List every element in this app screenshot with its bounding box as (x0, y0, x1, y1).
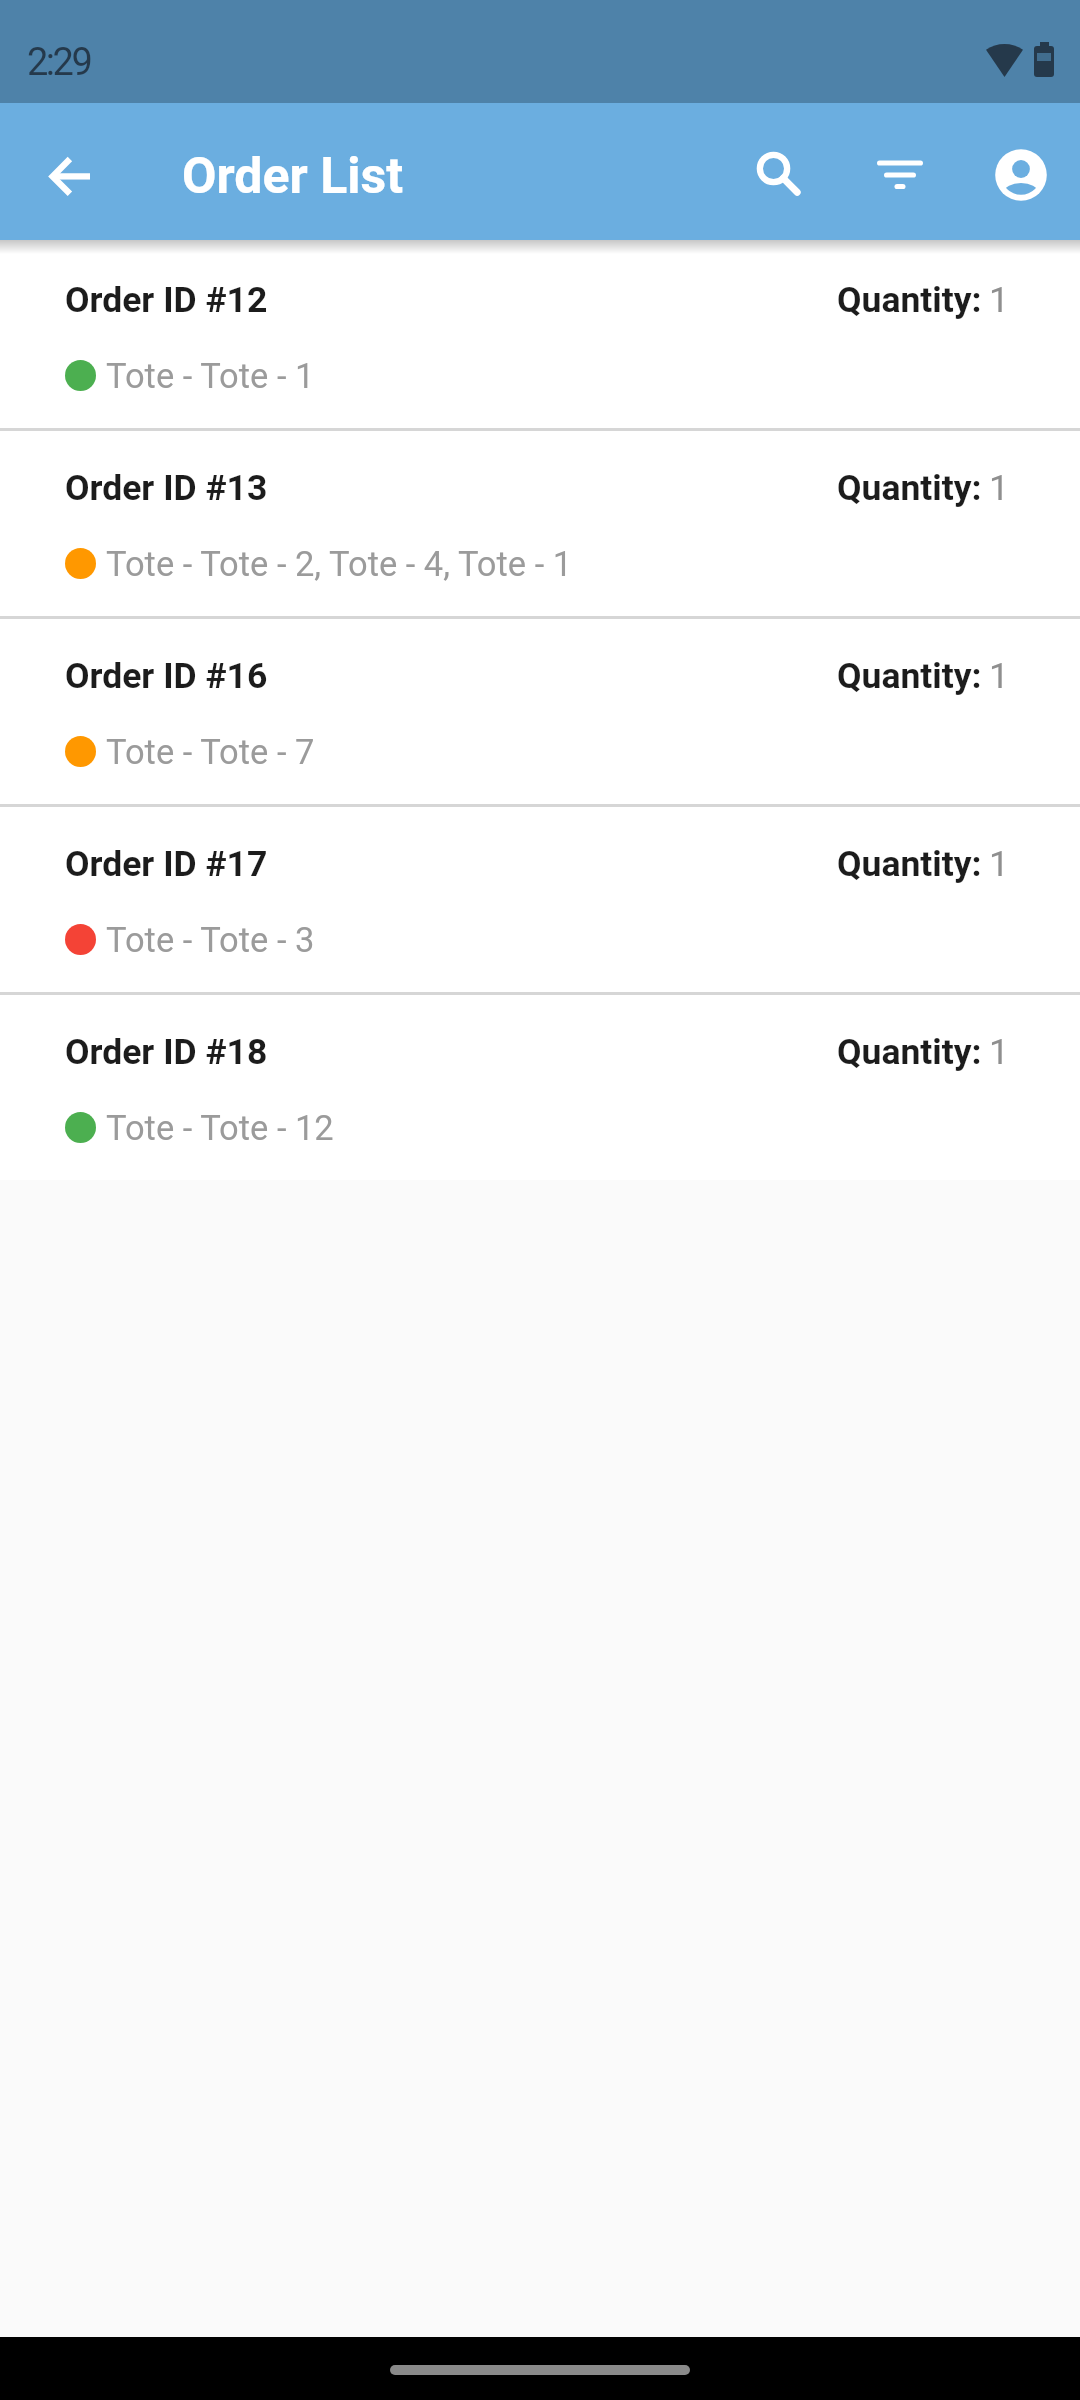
staticText: 1 (989, 843, 1009, 885)
button[interactable] (725, 124, 821, 220)
staticText: Order ID #17 (65, 843, 268, 885)
staticText: Order List (182, 147, 404, 206)
staticText: Order ID #16 (65, 655, 268, 697)
staticText: Order ID #12 (65, 279, 268, 321)
staticText: Quantity: (837, 655, 982, 697)
staticText: 1 (989, 279, 1009, 321)
staticText: Quantity: (837, 467, 982, 509)
staticText: 1 (989, 1031, 1009, 1073)
staticText: Tote - Tote - 2, Tote - 4, Tote - 1 (106, 544, 573, 584)
button[interactable] (24, 128, 120, 224)
staticText: Tote - Tote - 12 (106, 1108, 334, 1148)
button[interactable]: Order ID #16 (0, 616, 1080, 804)
staticText: 1 (989, 655, 1009, 697)
staticText: Quantity: (837, 1031, 982, 1073)
button[interactable]: Order ID #17 (0, 804, 1080, 992)
button[interactable] (852, 126, 948, 222)
staticText: Order ID #18 (65, 1031, 268, 1073)
staticText: 2:29 (27, 40, 91, 85)
staticText: Order ID #13 (65, 467, 268, 509)
staticText: Quantity: (837, 279, 982, 321)
staticText: Tote - Tote - 1 (106, 356, 315, 396)
button[interactable] (973, 127, 1069, 223)
staticText: Tote - Tote - 3 (106, 920, 315, 960)
staticText: Quantity: (837, 843, 982, 885)
staticText: Tote - Tote - 7 (106, 732, 315, 772)
button[interactable]: Order ID #18 (0, 992, 1080, 1180)
button[interactable]: Order ID #12 (0, 240, 1080, 428)
staticText: 1 (989, 467, 1009, 509)
button[interactable]: Order ID #13 (0, 428, 1080, 616)
button[interactable] (390, 2365, 690, 2375)
